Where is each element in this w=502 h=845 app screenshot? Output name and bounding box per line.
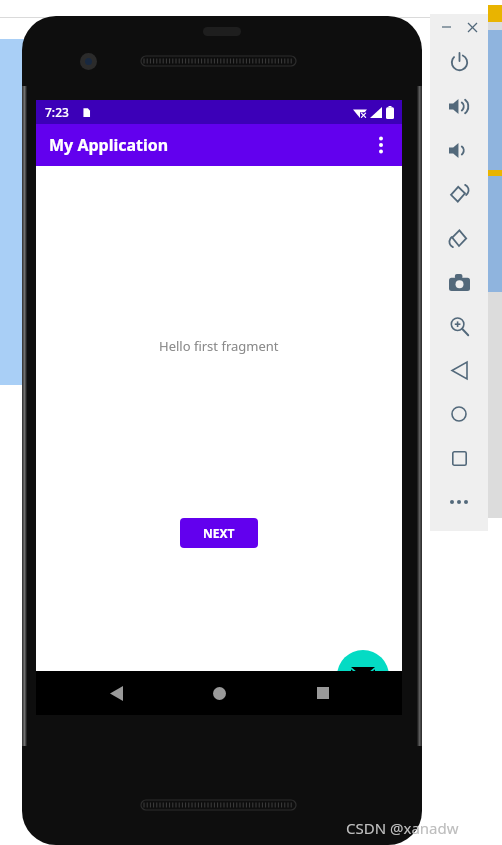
button[interactable]: Overview — [430, 436, 488, 480]
button[interactable]: Volume up — [430, 84, 488, 128]
button[interactable]: Zoom — [430, 304, 488, 348]
button[interactable]: Rotate right — [430, 216, 488, 260]
button[interactable]: Close — [463, 18, 481, 36]
staticText: 7:23 — [45, 104, 69, 120]
button[interactable]: Email — [337, 650, 389, 702]
button[interactable]: Minimize — [437, 18, 455, 36]
staticText: NEXT — [203, 525, 235, 541]
button[interactable]: Volume down — [430, 128, 488, 172]
button[interactable]: Rotate left — [430, 172, 488, 216]
button[interactable]: More — [430, 480, 488, 524]
staticText: My Application — [49, 134, 169, 156]
staticText: CSDN @xanadw — [346, 818, 459, 838]
button[interactable]: More options — [360, 124, 402, 166]
button[interactable]: Home — [430, 392, 488, 436]
button[interactable]: Screenshot — [430, 260, 488, 304]
button[interactable]: Power — [430, 40, 488, 84]
button[interactable]: NEXT — [180, 518, 258, 548]
button[interactable]: Home — [195, 671, 243, 715]
button[interactable]: Back — [430, 348, 488, 392]
button[interactable]: Recents — [299, 671, 347, 715]
staticText: Hello first fragment — [159, 337, 279, 355]
button[interactable]: Back — [92, 671, 140, 715]
